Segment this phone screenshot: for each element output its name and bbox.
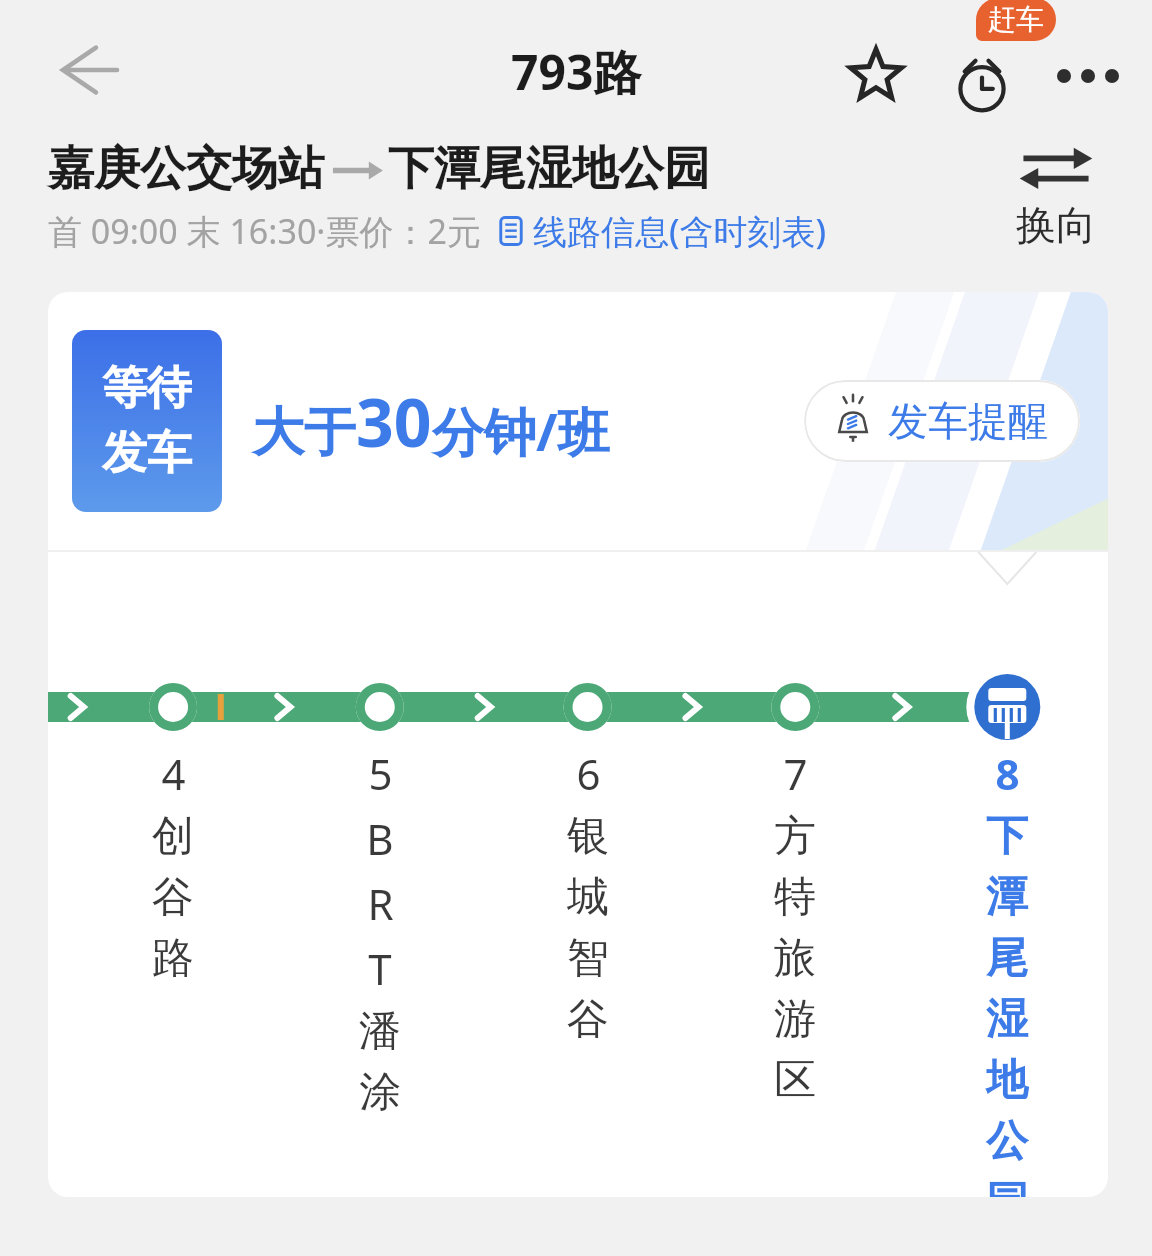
button[interactable]: 换向 xyxy=(980,144,1132,250)
staticText: 8 xyxy=(995,745,1020,802)
button[interactable]: More options xyxy=(1038,26,1138,126)
staticText: 首 09:00 末 16:30·票价：2元 xyxy=(48,208,481,254)
staticText: 谷 xyxy=(567,993,609,1046)
staticText: 方 xyxy=(774,810,816,863)
staticText: 特 xyxy=(774,871,816,924)
staticText: 嘉庚公交场站 xyxy=(48,140,324,198)
button[interactable]: 8 xyxy=(981,745,1033,1197)
staticText: 分钟/班 xyxy=(432,395,610,466)
staticText: 潘 xyxy=(359,1005,401,1058)
staticText: 下 xyxy=(986,810,1028,863)
button[interactable]: 等待 xyxy=(72,330,222,512)
button[interactable]: Favorite xyxy=(826,26,926,126)
button[interactable]: Alarm reminder xyxy=(926,20,1038,132)
button[interactable]: 4 xyxy=(147,745,199,993)
staticText: 793路 xyxy=(511,39,642,105)
staticText: 下潭尾湿地公园 xyxy=(388,140,710,198)
staticText: 城 xyxy=(567,871,609,924)
button[interactable]: 7 xyxy=(769,745,821,1115)
staticText: 游 xyxy=(774,993,816,1046)
button[interactable]: 6 xyxy=(562,745,614,1054)
staticText: 地 xyxy=(986,1054,1028,1107)
staticText: 银 xyxy=(567,810,609,863)
staticText: 园 xyxy=(986,1176,1028,1197)
staticText: 5 xyxy=(368,745,393,802)
staticText: 谷 xyxy=(152,871,194,924)
button[interactable]: 线路信息(含时刻表) xyxy=(495,208,827,254)
staticText: 公 xyxy=(986,1115,1028,1168)
staticText: 大于 xyxy=(252,400,356,466)
staticText: 等待 xyxy=(102,360,192,417)
staticText: 赶车 xyxy=(988,2,1044,37)
staticText: 尾 xyxy=(986,932,1028,985)
staticText: R xyxy=(367,875,394,932)
staticText: 换向 xyxy=(1016,200,1096,250)
staticText: B xyxy=(366,810,394,867)
button[interactable]: Back xyxy=(34,18,138,122)
staticText: 涂 xyxy=(359,1066,401,1119)
staticText: 潭 xyxy=(986,871,1028,924)
staticText: 30 xyxy=(356,376,432,466)
staticText: 湿 xyxy=(986,993,1028,1046)
button[interactable]: 发车提醒 xyxy=(804,380,1080,462)
staticText: 创 xyxy=(152,810,194,863)
staticText: 6 xyxy=(576,745,601,802)
staticText: 发车 xyxy=(102,425,192,482)
button[interactable]: 5 xyxy=(354,745,406,1127)
staticText: 4 xyxy=(161,745,186,802)
staticText: 7 xyxy=(783,745,808,802)
staticText: 区 xyxy=(774,1054,816,1107)
staticText: 路 xyxy=(152,932,194,985)
staticText: 线路信息(含时刻表) xyxy=(533,208,827,254)
staticText: T xyxy=(368,940,392,997)
staticText: 发车提醒 xyxy=(888,396,1048,446)
staticText: 旅 xyxy=(774,932,816,985)
staticText: 智 xyxy=(567,932,609,985)
